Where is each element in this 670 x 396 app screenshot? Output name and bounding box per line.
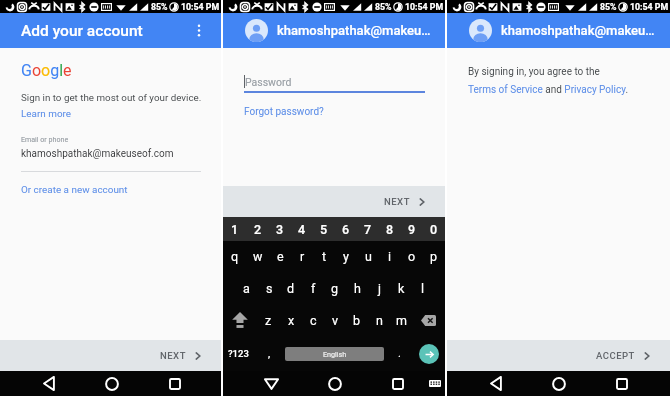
button[interactable]: More options xyxy=(181,13,217,48)
button[interactable]: Switch keyboard xyxy=(429,371,462,396)
button[interactable]: 5 xyxy=(313,217,335,241)
staticText: 1 xyxy=(231,222,239,237)
button[interactable]: Enter xyxy=(419,344,439,364)
button[interactable]: s xyxy=(258,272,280,304)
button[interactable]: e xyxy=(269,241,291,272)
button[interactable]: ACCEPT xyxy=(582,340,670,371)
button[interactable]: m xyxy=(390,304,412,336)
staticText: 3 xyxy=(276,222,284,237)
button[interactable]: u xyxy=(357,241,379,272)
button[interactable]: x xyxy=(280,304,302,336)
button[interactable]: 3 xyxy=(269,217,291,241)
button[interactable]: ?123 xyxy=(223,336,254,371)
staticText: 7 xyxy=(364,222,372,237)
staticText: Add your account xyxy=(21,22,143,40)
button[interactable]: Recent apps xyxy=(143,371,206,396)
button[interactable]: Back xyxy=(17,371,80,396)
button[interactable]: Home xyxy=(80,371,143,396)
button[interactable]: , xyxy=(254,336,285,371)
button[interactable]: q xyxy=(223,241,246,272)
button[interactable]: y xyxy=(335,241,357,272)
staticText: j xyxy=(378,281,381,296)
staticText: 8 xyxy=(386,222,394,237)
button[interactable]: Forgot password? xyxy=(244,106,324,118)
staticText: i xyxy=(388,249,392,264)
staticText: 5 xyxy=(320,222,328,237)
button[interactable]: g xyxy=(324,272,346,304)
button[interactable]: NEXT xyxy=(370,186,445,217)
staticText: s xyxy=(266,281,273,296)
button[interactable]: c xyxy=(302,304,324,336)
staticText: 10:54 PM xyxy=(405,2,444,12)
staticText: w xyxy=(253,249,263,264)
staticText: 10:54 PM xyxy=(630,2,669,12)
staticText: 85% xyxy=(375,2,392,12)
staticText: ?123 xyxy=(228,348,249,359)
staticText: Email or phone xyxy=(21,135,69,143)
button[interactable]: z xyxy=(257,304,280,336)
staticText: p xyxy=(430,249,438,264)
staticText: c xyxy=(310,313,317,328)
button[interactable]: Recent apps xyxy=(590,371,653,396)
button[interactable]: o xyxy=(401,241,423,272)
button[interactable]: w xyxy=(246,241,269,272)
button[interactable]: f xyxy=(302,272,324,304)
button[interactable]: Recent apps xyxy=(366,371,429,396)
staticText: h xyxy=(354,281,361,296)
staticText: ACCEPT xyxy=(596,350,635,361)
staticText: y xyxy=(343,249,349,264)
button[interactable]: t xyxy=(313,241,335,272)
button[interactable]: b xyxy=(346,304,368,336)
staticText: Sign in to get the most out of your devi… xyxy=(21,92,202,103)
staticText: NEXT xyxy=(160,350,186,361)
button[interactable]: Back xyxy=(240,371,303,396)
button[interactable]: v xyxy=(324,304,346,336)
button[interactable]: Home xyxy=(527,371,590,396)
staticText: g xyxy=(331,281,339,296)
button[interactable]: r xyxy=(291,241,313,272)
staticText: f xyxy=(311,281,316,296)
button[interactable]: a xyxy=(235,272,258,304)
button[interactable]: h xyxy=(346,272,368,304)
button[interactable]: Terms of Service and Privacy Policy. xyxy=(468,84,629,96)
button[interactable]: n xyxy=(368,304,390,336)
staticText: 85% xyxy=(600,2,617,12)
button[interactable]: Home xyxy=(303,371,366,396)
staticText: k xyxy=(398,281,405,296)
staticText: 6 xyxy=(342,222,350,237)
button[interactable]: Or create a new account xyxy=(21,184,128,196)
button[interactable]: Learn more xyxy=(21,108,72,120)
button[interactable]: 0 xyxy=(423,217,445,241)
button[interactable]: p xyxy=(423,241,445,272)
button[interactable]: j xyxy=(368,272,390,304)
staticText: 4 xyxy=(298,222,306,237)
button[interactable]: Back xyxy=(464,371,527,396)
staticText: 9 xyxy=(408,222,416,237)
staticText: , xyxy=(268,347,271,360)
staticText: By signing in, you agree to the xyxy=(468,66,600,78)
button[interactable]: i xyxy=(379,241,401,272)
button[interactable]: 6 xyxy=(335,217,357,241)
button[interactable]: 4 xyxy=(291,217,313,241)
staticText: English xyxy=(323,350,347,358)
button[interactable]: . xyxy=(384,336,415,371)
button[interactable]: 8 xyxy=(379,217,401,241)
button[interactable]: 9 xyxy=(401,217,423,241)
button[interactable]: NEXT xyxy=(146,340,221,371)
button[interactable]: Shift xyxy=(223,304,257,336)
button[interactable]: English xyxy=(285,347,384,361)
button[interactable]: 7 xyxy=(357,217,379,241)
staticText: 85% xyxy=(151,2,168,12)
button[interactable]: 2 xyxy=(246,217,269,241)
button[interactable]: k xyxy=(390,272,412,304)
button[interactable]: Backspace xyxy=(412,304,445,336)
staticText: o xyxy=(408,249,416,264)
staticText: n xyxy=(376,313,383,328)
button[interactable]: l xyxy=(412,272,434,304)
button[interactable]: d xyxy=(280,272,302,304)
staticText: r xyxy=(300,249,305,264)
staticText: d xyxy=(287,281,295,296)
staticText: a xyxy=(243,281,250,296)
staticText: Password xyxy=(245,76,292,88)
button[interactable]: 1 xyxy=(223,217,246,241)
